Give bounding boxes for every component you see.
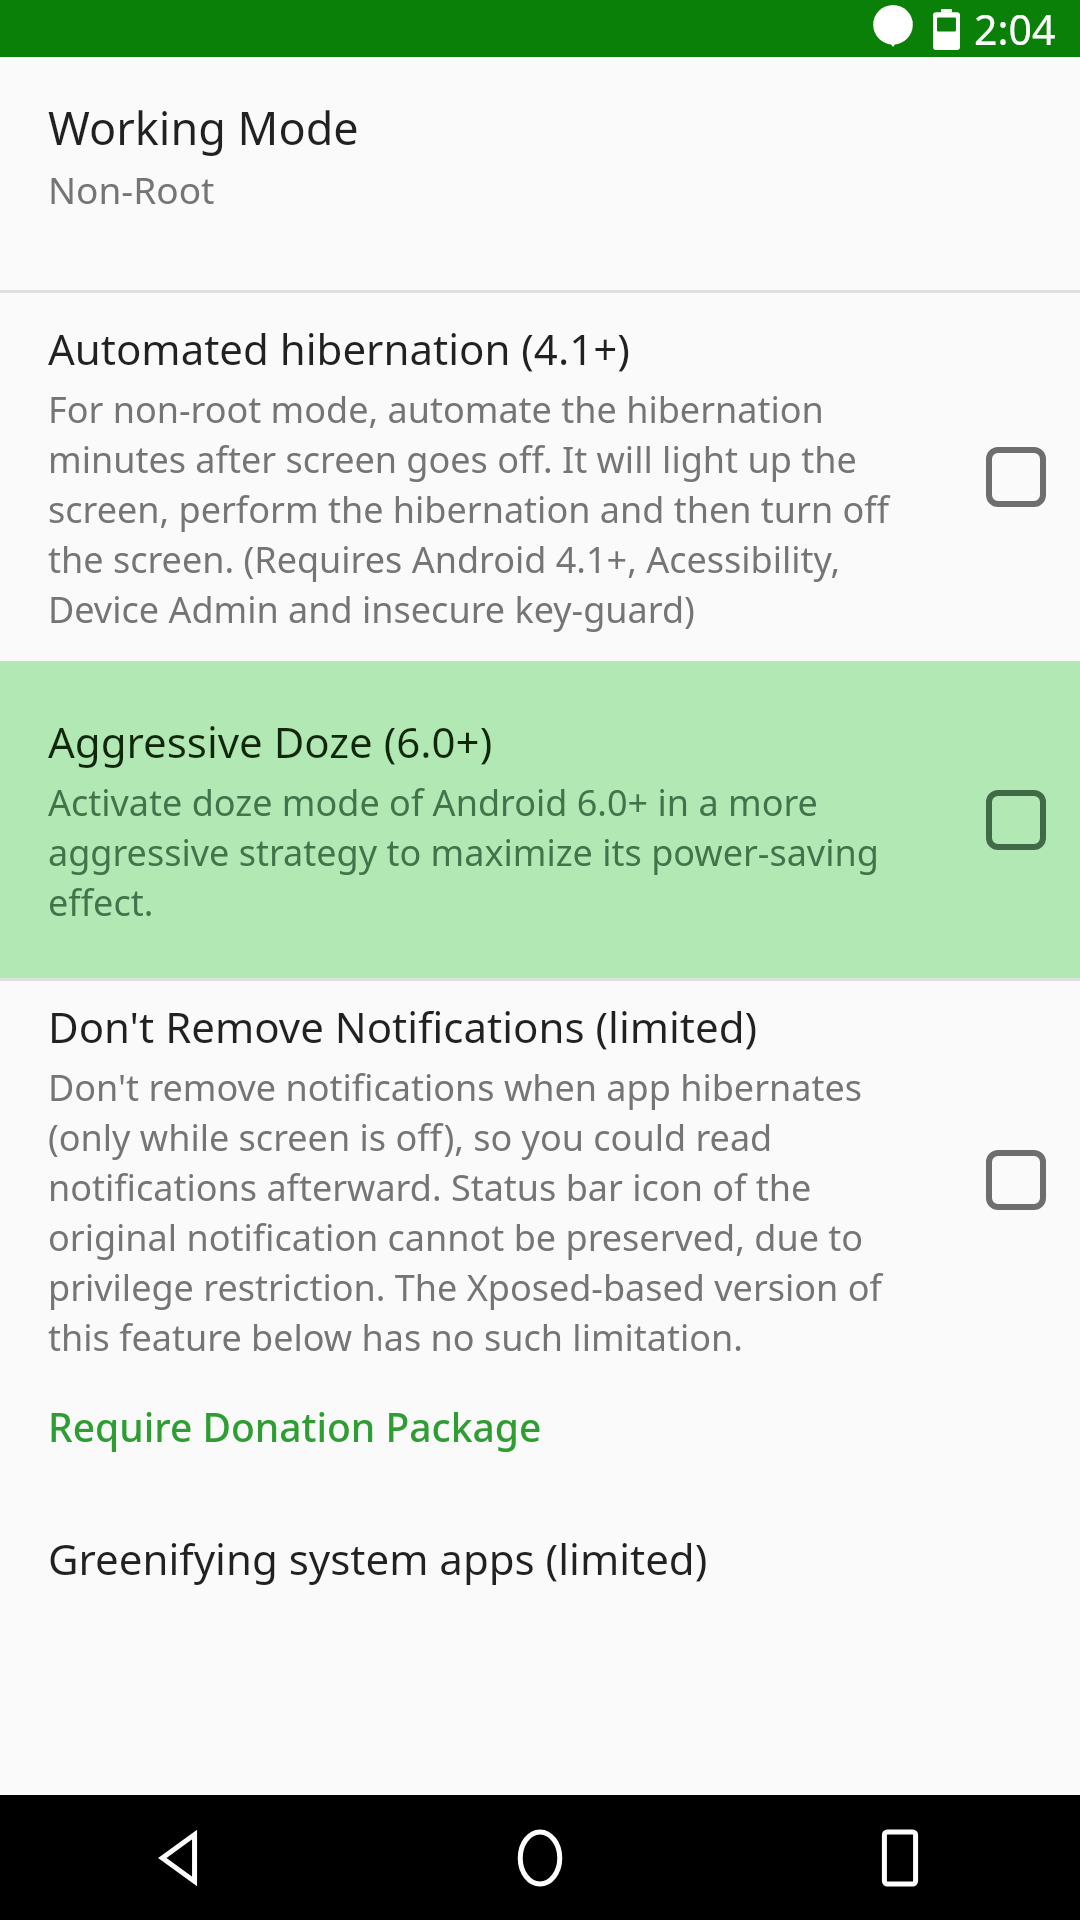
button[interactable]: Working Mode xyxy=(0,57,1080,290)
button[interactable]: Greenifying system apps (limited) xyxy=(0,1478,1080,1598)
staticText: Don't remove notifications when app hibe… xyxy=(48,1063,940,1362)
button[interactable]: Back xyxy=(0,1795,360,1920)
button[interactable]: Require Donation Package xyxy=(0,1378,1080,1478)
staticText: Working Mode xyxy=(48,97,359,158)
staticText: Don't Remove Notifications (limited) xyxy=(48,998,758,1055)
staticText: For non-root mode, automate the hibernat… xyxy=(48,385,940,634)
staticText: Activate doze mode of Android 6.0+ in a … xyxy=(48,778,940,927)
staticText: Non-Root xyxy=(48,164,215,214)
button[interactable]: Recent apps xyxy=(720,1795,1080,1920)
button[interactable]: Automated hibernation (4.1+) xyxy=(0,293,1080,661)
button[interactable]: Don't Remove Notifications (limited) xyxy=(952,981,1080,1378)
button[interactable]: Don't Remove Notifications (limited) xyxy=(0,981,1080,1378)
staticText: Greenifying system apps (limited) xyxy=(48,1530,708,1587)
button[interactable]: Aggressive Doze (6.0+) xyxy=(952,661,1080,978)
staticText: 2:04 xyxy=(974,1,1056,57)
staticText: Require Donation Package xyxy=(48,1400,542,1453)
staticText: Aggressive Doze (6.0+) xyxy=(48,713,493,770)
button[interactable]: Aggressive Doze (6.0+) xyxy=(0,661,1080,978)
staticText: Automated hibernation (4.1+) xyxy=(48,320,630,377)
button[interactable]: Home xyxy=(360,1795,720,1920)
button[interactable]: Automated hibernation (4.1+) xyxy=(952,293,1080,661)
